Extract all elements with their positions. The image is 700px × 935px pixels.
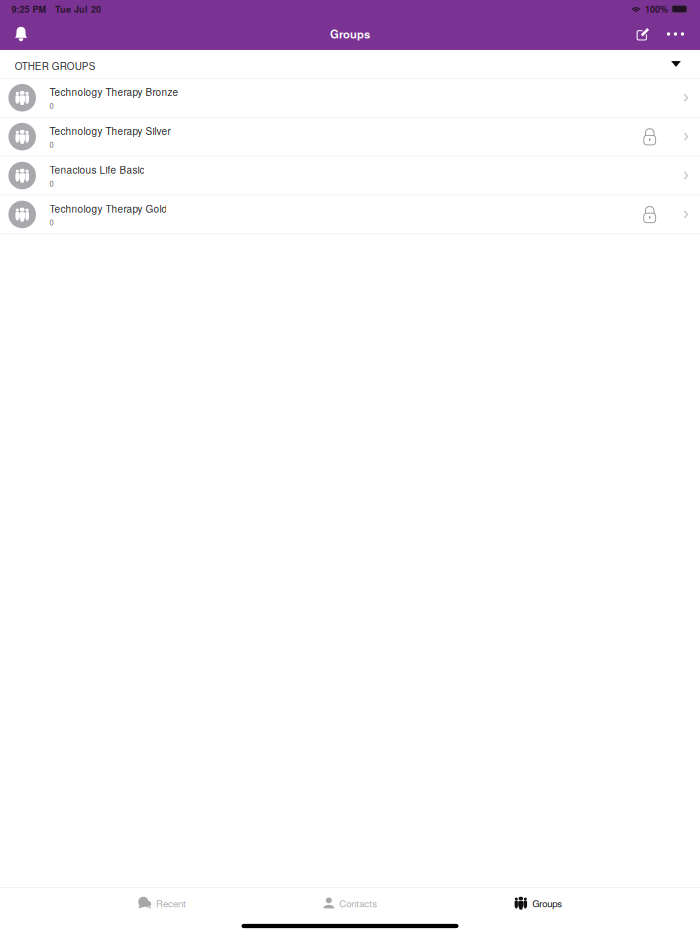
button[interactable]: Recent bbox=[68, 888, 256, 918]
staticText: Contacts bbox=[339, 896, 377, 910]
button[interactable]: Groups bbox=[444, 888, 632, 918]
staticText: 0 bbox=[49, 139, 53, 150]
button[interactable]: Technology Therapy Silver bbox=[0, 117, 700, 156]
button[interactable]: Technology Therapy Gold bbox=[0, 195, 700, 234]
staticText: 0 bbox=[49, 100, 53, 111]
button[interactable]: Contacts bbox=[256, 888, 444, 918]
staticText: 9:25 PM bbox=[11, 2, 46, 15]
staticText: 100% bbox=[645, 2, 668, 15]
button[interactable]: Notifications bbox=[7, 18, 35, 50]
staticText: 0 bbox=[49, 178, 53, 189]
staticText: Technology Therapy Gold bbox=[49, 201, 167, 215]
button[interactable]: Collapse Other Groups bbox=[664, 52, 688, 76]
button[interactable]: Compose bbox=[626, 18, 660, 50]
staticText: Groups bbox=[532, 896, 562, 910]
button[interactable]: Tenacious Life Basic bbox=[0, 156, 700, 195]
staticText: Tenacious Life Basic bbox=[49, 162, 144, 177]
staticText: Recent bbox=[156, 896, 186, 910]
button[interactable]: More options bbox=[660, 18, 691, 50]
staticText: OTHER GROUPS bbox=[15, 59, 96, 73]
staticText: Technology Therapy Bronze bbox=[49, 84, 178, 99]
staticText: Groups bbox=[330, 26, 370, 42]
button[interactable]: Technology Therapy Bronze bbox=[0, 79, 700, 117]
staticText: 0 bbox=[49, 217, 53, 228]
staticText: Technology Therapy Silver bbox=[49, 123, 170, 138]
staticText: Tue Jul 20 bbox=[55, 2, 101, 15]
